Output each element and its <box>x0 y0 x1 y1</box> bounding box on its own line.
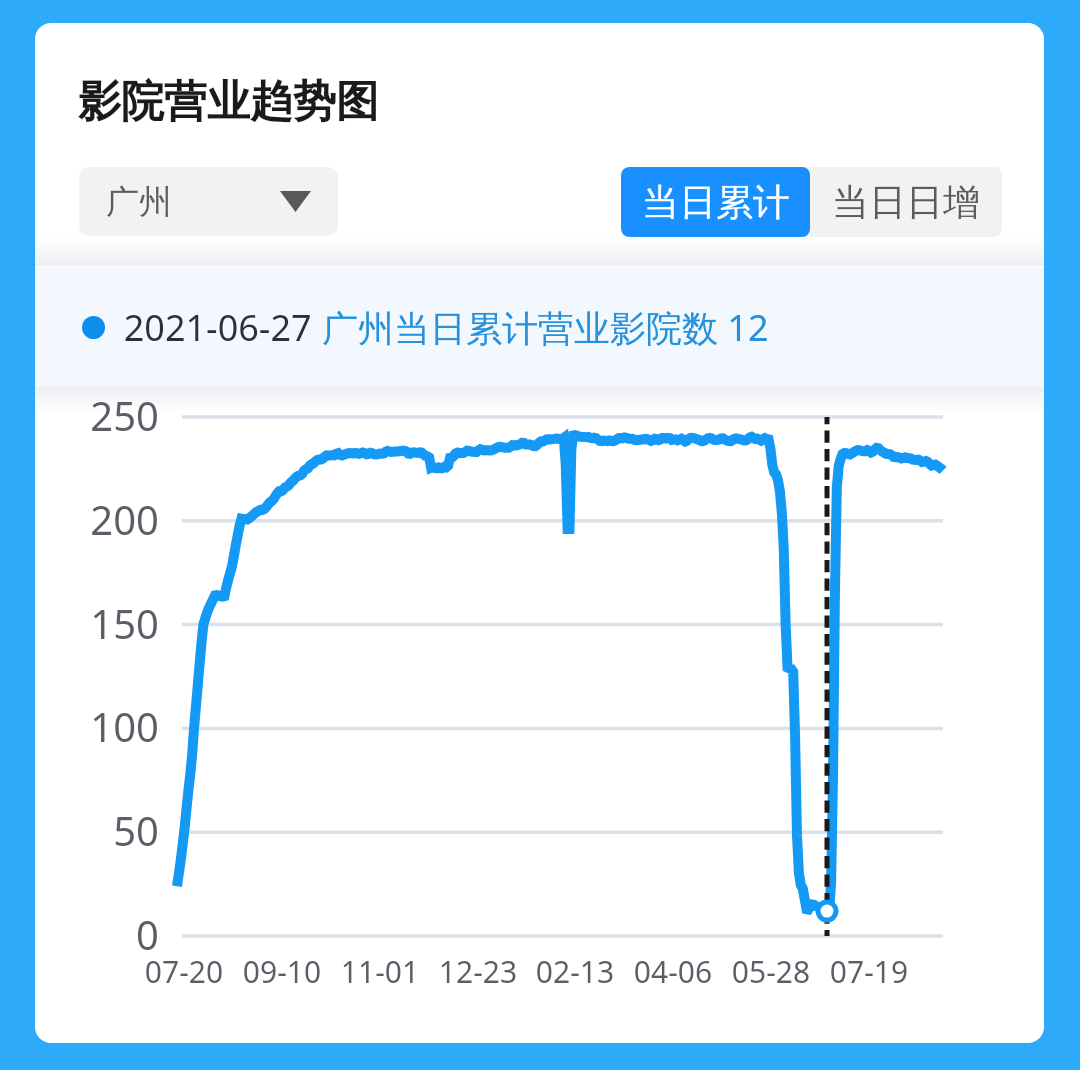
staticText: 50 <box>39 803 159 857</box>
staticText: 05-28 <box>711 951 831 992</box>
staticText: 04-06 <box>613 951 733 992</box>
button[interactable]: 广州 <box>79 167 338 236</box>
staticText: 200 <box>39 492 159 546</box>
button[interactable]: 当日累计 <box>621 167 810 237</box>
staticText: 150 <box>39 596 159 650</box>
staticText: 广州当日累计营业影院数 12 <box>322 303 769 352</box>
staticText: 100 <box>39 699 159 753</box>
staticText: 07-19 <box>809 951 929 992</box>
staticText: 当日累计 <box>642 179 790 226</box>
staticText: 2021-06-27 <box>105 303 322 352</box>
staticText: 02-13 <box>515 951 635 992</box>
staticText: 09-10 <box>222 951 342 992</box>
staticText: 0 <box>39 907 159 961</box>
staticText: 12-23 <box>418 951 538 992</box>
staticText: 当日日增 <box>832 179 980 226</box>
staticText: 影院营业趋势图 <box>78 75 379 129</box>
staticText: 广州 <box>106 181 172 223</box>
staticText: 250 <box>39 388 159 442</box>
staticText: 11-01 <box>320 951 440 992</box>
button[interactable]: 当日日增 <box>810 167 1002 237</box>
staticText: 07-20 <box>124 951 244 992</box>
